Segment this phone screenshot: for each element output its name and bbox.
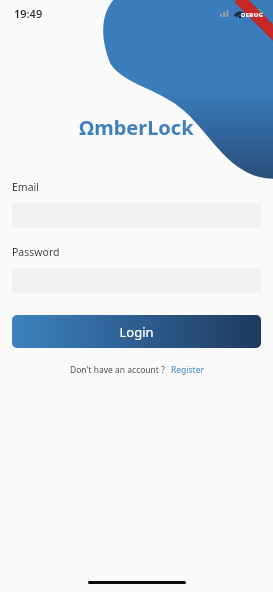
staticText: Register bbox=[171, 364, 204, 376]
staticText: Don't have an account ? bbox=[70, 364, 165, 376]
staticText: ΩmberLock bbox=[79, 114, 194, 141]
staticText: DEBUG bbox=[241, 11, 264, 19]
staticText: 19:49 bbox=[14, 6, 43, 21]
button[interactable]: Login bbox=[12, 315, 261, 348]
staticText: Password bbox=[12, 245, 60, 259]
staticText: Login bbox=[119, 323, 154, 341]
staticText: Email bbox=[12, 180, 39, 194]
button[interactable]: Register bbox=[171, 364, 204, 376]
